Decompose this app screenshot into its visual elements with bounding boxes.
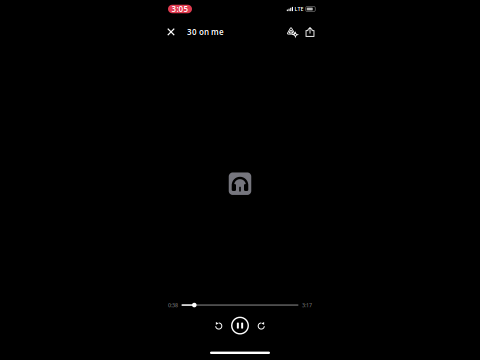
button[interactable]: Close	[162, 23, 180, 41]
button[interactable]: AirPlay	[283, 23, 301, 41]
button[interactable]: Playback position, 0:38 of 3:17	[157, 301, 323, 309]
button[interactable]: Pause	[231, 317, 249, 335]
staticText: 30 on me	[187, 27, 224, 37]
staticText: LTE	[294, 5, 303, 13]
button[interactable]: Skip forward 15 seconds	[254, 317, 268, 335]
staticText: 3:17	[302, 301, 312, 309]
button[interactable]: Share	[301, 23, 319, 41]
staticText: 3:05	[171, 4, 188, 14]
staticText: 0:38	[168, 301, 178, 309]
button[interactable]: Skip back 15 seconds	[211, 317, 226, 335]
